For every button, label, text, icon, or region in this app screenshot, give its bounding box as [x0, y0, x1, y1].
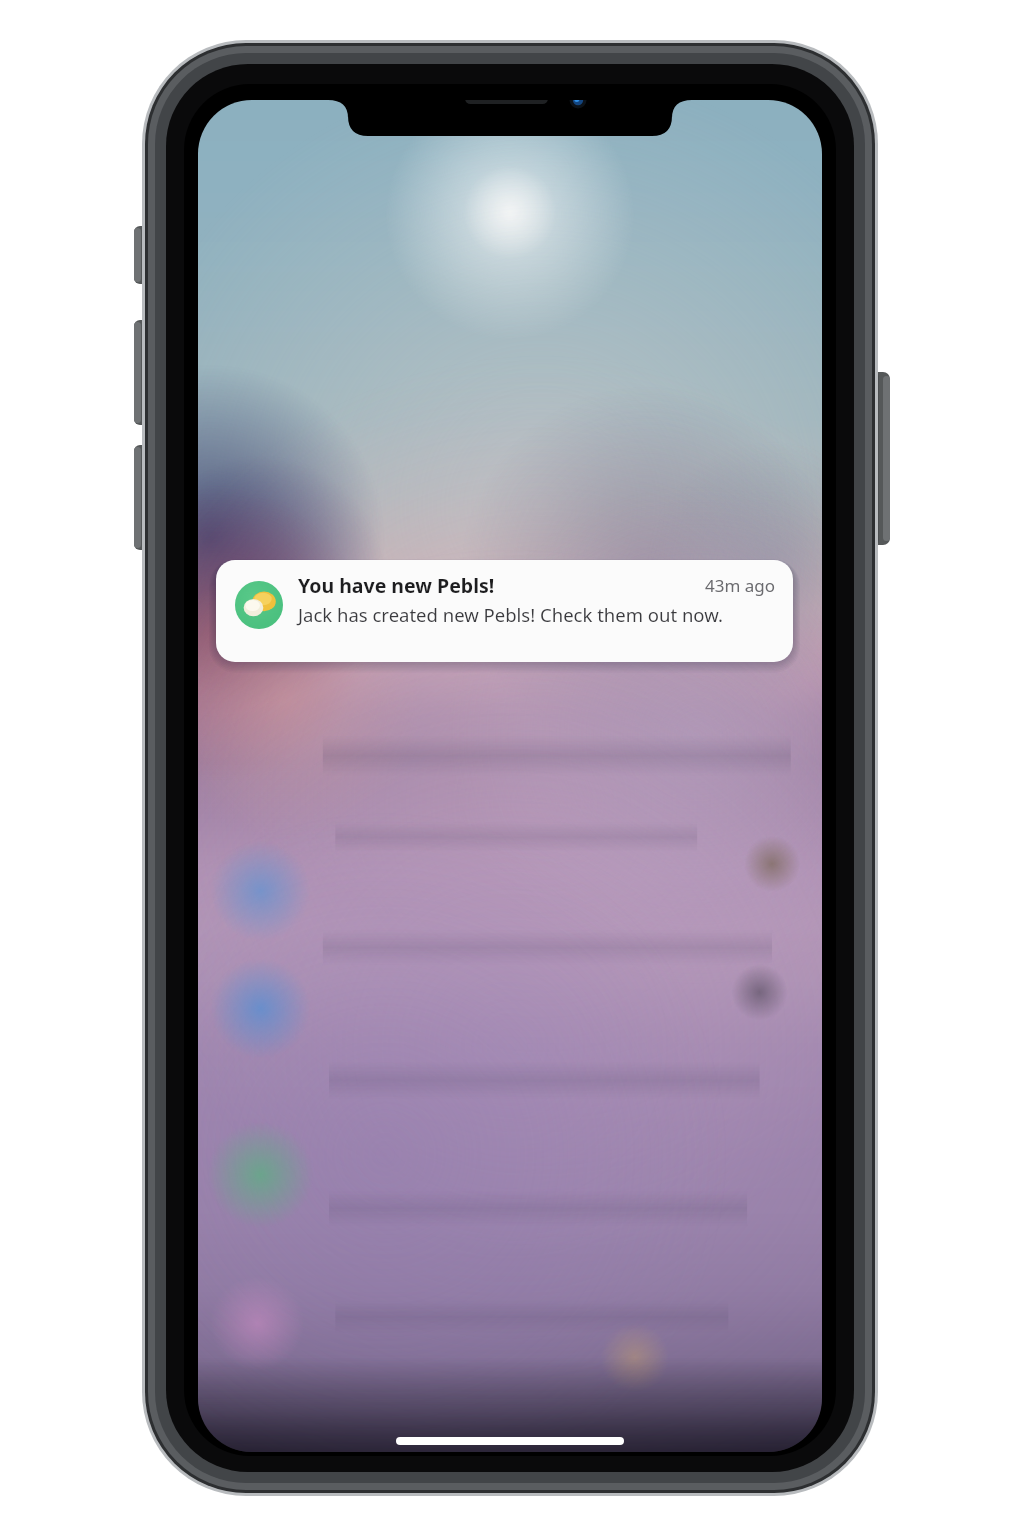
button[interactable]: Pebl app icon	[216, 560, 793, 662]
other: Home	[396, 1437, 624, 1445]
staticText: You have new Pebls!	[298, 572, 495, 599]
staticText: Jack has created new Pebls! Check them o…	[298, 602, 723, 627]
staticText: 43m ago	[705, 574, 776, 597]
other: Pebl app icon	[235, 581, 283, 629]
